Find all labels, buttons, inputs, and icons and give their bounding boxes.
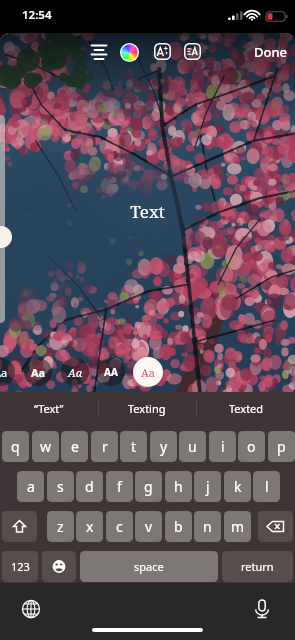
button[interactable]: Text style (184, 43, 201, 60)
button[interactable]: y (150, 431, 177, 462)
button[interactable]: l (253, 471, 280, 502)
staticText: j (206, 477, 210, 496)
button[interactable]: e (61, 431, 88, 462)
staticText: p (277, 437, 286, 456)
button[interactable]: d (76, 471, 103, 502)
button[interactable]: Text effects (154, 43, 171, 60)
button[interactable]: Shift (2, 511, 37, 542)
staticText: k (234, 477, 242, 496)
button[interactable]: space (80, 551, 218, 582)
button[interactable]: “Text” (0, 392, 98, 425)
button[interactable]: Done (252, 43, 290, 61)
staticText: h (174, 477, 183, 496)
staticText: 12:54 (22, 7, 52, 23)
staticText: g (144, 477, 153, 496)
button[interactable]: k (224, 471, 251, 502)
staticText: Aa (141, 365, 155, 380)
staticText: Text (130, 200, 165, 223)
staticText: e (71, 437, 79, 456)
staticText: t (131, 437, 137, 456)
staticText: l (265, 477, 269, 496)
staticText: 123 (11, 559, 30, 574)
staticText: n (203, 517, 212, 536)
button[interactable]: v (135, 511, 162, 542)
button[interactable]: a (17, 471, 44, 502)
button[interactable]: n (194, 511, 221, 542)
button[interactable]: Aa (24, 358, 52, 386)
button[interactable]: h (165, 471, 192, 502)
staticText: a (27, 477, 35, 496)
button[interactable]: Texted (197, 392, 295, 425)
button[interactable]: r (91, 431, 118, 462)
button[interactable]: Change keyboard (18, 596, 44, 622)
staticText: Texting (128, 401, 166, 416)
staticText: space (134, 559, 164, 574)
staticText: x (86, 517, 94, 536)
staticText: f (117, 477, 122, 496)
staticText: return (241, 559, 274, 574)
button[interactable]: Aa (133, 357, 163, 387)
button[interactable]: j (194, 471, 221, 502)
staticText: i (221, 437, 225, 456)
staticText: r (102, 437, 108, 456)
button[interactable]: Emoji (42, 551, 76, 582)
button[interactable]: q (2, 431, 29, 462)
button[interactable]: return (222, 551, 293, 582)
staticText: s (57, 477, 64, 496)
staticText: y (160, 437, 168, 456)
staticText: o (247, 437, 256, 456)
button[interactable]: Texting (98, 392, 196, 425)
staticText: u (188, 437, 197, 456)
button[interactable]: m (224, 511, 251, 542)
button[interactable]: o (238, 431, 265, 462)
button[interactable]: f (106, 471, 133, 502)
staticText: b (174, 517, 183, 536)
staticText: c (116, 517, 123, 536)
staticText: w (40, 437, 52, 456)
button[interactable]: Color (120, 43, 139, 62)
button[interactable]: x (76, 511, 103, 542)
staticText: Aa (68, 365, 83, 380)
button[interactable]: AA (97, 358, 125, 386)
staticText: “Text” (34, 401, 64, 416)
button[interactable]: Aa (0, 358, 15, 386)
button[interactable]: 123 (2, 551, 38, 582)
button[interactable]: b (165, 511, 192, 542)
button[interactable]: c (106, 511, 133, 542)
button[interactable]: i (209, 431, 236, 462)
button[interactable]: Aa (61, 358, 89, 386)
button[interactable]: z (47, 511, 74, 542)
button[interactable]: Dictate (249, 596, 275, 622)
button[interactable]: s (47, 471, 74, 502)
button[interactable]: u (179, 431, 206, 462)
button[interactable]: g (135, 471, 162, 502)
staticText: Aa (0, 365, 8, 380)
staticText: v (145, 517, 153, 536)
staticText: m (231, 517, 245, 536)
staticText: Aa (31, 365, 46, 380)
staticText: Done (254, 43, 288, 61)
button[interactable]: Backspace (258, 511, 293, 542)
staticText: Texted (229, 401, 264, 416)
staticText: AA (104, 365, 118, 379)
button[interactable]: Text alignment (90, 42, 110, 62)
button[interactable]: t (120, 431, 147, 462)
staticText: q (11, 437, 20, 456)
button[interactable]: p (268, 431, 295, 462)
staticText: d (85, 477, 94, 496)
staticText: z (57, 517, 64, 536)
button[interactable]: w (32, 431, 59, 462)
